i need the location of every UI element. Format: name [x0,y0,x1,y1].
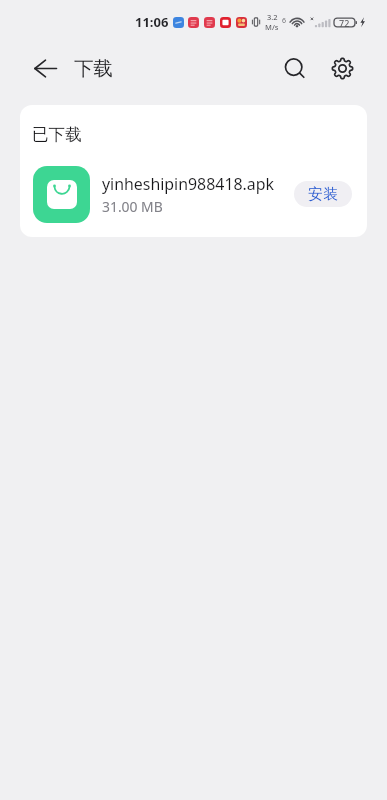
staticText: 已下载 [32,124,82,145]
staticText: 31.00 MB [102,197,163,216]
staticText: 3.2 [267,12,278,22]
staticText: yinheshipin988418.apk [102,173,274,195]
button[interactable]: 安装 [294,181,352,207]
button[interactable]: Settings [323,46,361,90]
staticText: 6 [282,16,287,26]
staticText: 下载 [74,56,113,81]
staticText: 72 [339,17,350,29]
button[interactable]: yinheshipin988418.apk [20,163,367,225]
staticText: M/s [265,22,279,32]
button[interactable]: Back [33,46,57,90]
button[interactable]: Search [276,46,314,90]
staticText: 安装 [308,185,338,204]
staticText: 11:06 [135,13,169,31]
